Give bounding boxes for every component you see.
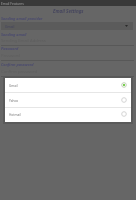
staticText: Password [1,46,19,51]
staticText: Yahoo [9,99,120,103]
staticText: Confirm password [1,62,34,67]
button[interactable]: Yahoo [5,93,131,108]
staticText: Gmail [9,84,120,88]
staticText: Email Settings [53,8,84,14]
staticText: Sending email provider [1,16,43,21]
staticText: Email Features [1,1,24,5]
staticText: Sending email [1,32,27,37]
button[interactable]: Gmail [5,78,131,93]
staticText: Gmail [5,24,15,29]
button[interactable]: Hotmail [5,108,131,122]
staticText: Hotmail [9,113,120,117]
